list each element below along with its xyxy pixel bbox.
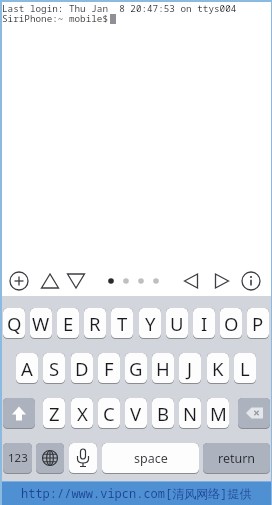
- button[interactable]: Z: [43, 398, 65, 429]
- staticText: J: [187, 356, 193, 381]
- staticText: V: [130, 401, 142, 426]
- staticText: W: [32, 311, 50, 336]
- button[interactable]: O: [220, 308, 242, 339]
- staticText: G: [129, 356, 143, 381]
- staticText: K: [212, 356, 224, 381]
- staticText: C: [103, 401, 115, 426]
- staticText: return: [218, 450, 256, 467]
- button[interactable]: S: [43, 353, 65, 384]
- staticText: S: [49, 356, 60, 381]
- button[interactable]: I: [193, 308, 215, 339]
- staticText: 123: [8, 450, 28, 466]
- button[interactable]: Q: [3, 308, 25, 339]
- staticText: L: [240, 356, 250, 381]
- staticText: F: [104, 356, 114, 381]
- button[interactable]: U: [166, 308, 188, 339]
- button[interactable]: B: [152, 398, 174, 429]
- staticText: D: [75, 356, 89, 381]
- button[interactable]: return: [203, 443, 270, 474]
- staticText: Q: [7, 311, 22, 336]
- staticText: E: [63, 311, 74, 336]
- staticText: T: [117, 311, 128, 336]
- button[interactable]: J: [179, 353, 201, 384]
- staticText: Z: [49, 401, 60, 426]
- button[interactable]: Y: [139, 308, 161, 339]
- button[interactable]: D: [71, 353, 93, 384]
- button[interactable]: H: [152, 353, 174, 384]
- button[interactable]: C: [98, 398, 120, 429]
- button[interactable]: F: [98, 353, 120, 384]
- button[interactable]: X: [71, 398, 93, 429]
- staticText: X: [77, 401, 88, 426]
- button[interactable]: P: [247, 308, 269, 339]
- button[interactable]: [36, 443, 64, 474]
- button[interactable]: [40, 271, 60, 291]
- staticText: H: [156, 356, 170, 381]
- button[interactable]: G: [125, 353, 147, 384]
- button[interactable]: 123: [3, 443, 32, 474]
- staticText: P: [252, 311, 264, 336]
- staticText: space: [134, 450, 168, 467]
- button[interactable]: E: [57, 308, 79, 339]
- button[interactable]: V: [125, 398, 147, 429]
- staticText: Y: [145, 311, 156, 336]
- button[interactable]: [69, 443, 97, 474]
- button[interactable]: [66, 271, 86, 291]
- staticText: M: [210, 401, 227, 426]
- button[interactable]: N: [179, 398, 201, 429]
- staticText: B: [157, 401, 170, 426]
- button[interactable]: T: [111, 308, 133, 339]
- staticText: http://www.vipcn.com[清风网络]提供: [21, 485, 252, 501]
- button[interactable]: K: [207, 353, 229, 384]
- button[interactable]: http://www.vipcn.com[清风网络]提供: [0, 481, 272, 505]
- staticText: R: [89, 311, 101, 336]
- button[interactable]: [241, 271, 261, 291]
- staticText: O: [224, 311, 239, 336]
- button[interactable]: W: [30, 308, 52, 339]
- staticText: Last login: Thu Jan 8 20:47:53 on ttys00…: [2, 2, 237, 25]
- button[interactable]: A: [16, 353, 38, 384]
- button[interactable]: L: [234, 353, 256, 384]
- staticText: U: [170, 311, 184, 336]
- button[interactable]: [9, 271, 29, 291]
- button[interactable]: M: [207, 398, 229, 429]
- button[interactable]: [238, 398, 270, 429]
- button[interactable]: R: [84, 308, 106, 339]
- button[interactable]: space: [102, 443, 199, 474]
- button[interactable]: [181, 271, 201, 291]
- staticText: A: [21, 356, 33, 381]
- button[interactable]: [3, 398, 35, 429]
- staticText: N: [183, 401, 198, 426]
- staticText: I: [201, 311, 208, 336]
- button[interactable]: [212, 271, 232, 291]
